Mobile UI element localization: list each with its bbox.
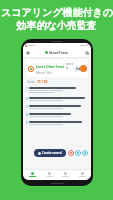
staticText: Create record [42, 151, 62, 155]
button[interactable]: Menu [25, 50, 30, 55]
button[interactable]: 5 [26, 120, 88, 128]
button[interactable]: Jones Olive Store [26, 60, 88, 77]
staticText: 3 [26, 105, 28, 109]
button[interactable]: Create record [34, 149, 66, 157]
staticText: 4 [26, 113, 28, 117]
staticText: 1 [26, 87, 28, 91]
staticText: Score [27, 80, 35, 84]
button[interactable]: More [75, 172, 89, 177]
staticText: 5 [26, 121, 28, 125]
button[interactable]: Start [74, 66, 86, 72]
staticText: Jones Olive Store [36, 64, 65, 69]
staticText: March 14th [36, 71, 52, 75]
staticText: Start [76, 67, 84, 71]
button[interactable]: 1 [26, 86, 88, 96]
button[interactable]: Flag issue [68, 150, 74, 156]
button[interactable]: Add note [82, 150, 88, 156]
button[interactable]: Take photo [75, 150, 81, 156]
button[interactable]: Audit score [80, 65, 87, 72]
button[interactable]: Home [25, 172, 39, 177]
button[interactable]: Search [84, 50, 89, 55]
staticText: 72 / 94 [37, 80, 48, 84]
button[interactable]: 2 [26, 96, 88, 104]
staticText: StoreForce [49, 50, 69, 55]
staticText: 2 [26, 97, 28, 101]
button[interactable]: Tasks [42, 172, 56, 177]
staticText: スコアリング機能付きの [1, 6, 113, 19]
staticText: 効率的な小売監査 [16, 19, 97, 32]
button[interactable]: 4 [26, 112, 88, 120]
button[interactable]: Audits [58, 172, 72, 177]
staticText: weekly [66, 62, 74, 70]
button[interactable]: 3 [26, 104, 88, 112]
